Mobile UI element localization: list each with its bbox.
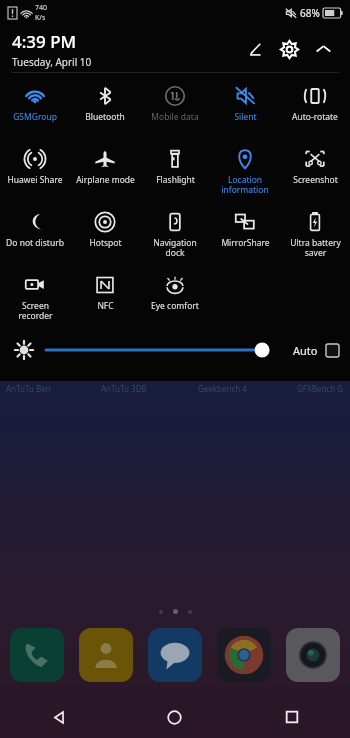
button[interactable]: Brightness <box>44 338 285 362</box>
button[interactable]: Eye comfort <box>140 267 210 330</box>
staticText: GSMGroup <box>13 111 57 123</box>
button[interactable]: App <box>79 628 133 682</box>
button[interactable]: Navigation dock <box>140 204 210 267</box>
staticText: Eye comfort <box>151 300 199 312</box>
button[interactable]: Screen recorder <box>0 267 70 330</box>
button[interactable]: App <box>286 628 340 682</box>
staticText: Bluetooth <box>85 111 125 123</box>
button[interactable]: Settings <box>272 32 306 66</box>
button[interactable]: MirrorShare <box>210 204 280 267</box>
button[interactable]: App <box>148 628 202 682</box>
button[interactable]: Screenshot <box>280 141 350 204</box>
button[interactable]: Edit <box>238 32 272 66</box>
button[interactable]: Bluetooth <box>70 78 140 141</box>
staticText: Huawei Share <box>7 174 63 186</box>
staticText: MirrorShare <box>221 237 270 249</box>
button[interactable]: Flashlight <box>140 141 210 204</box>
staticText: Auto <box>293 343 318 358</box>
staticText: Hotspot <box>89 237 122 249</box>
staticText: Screen recorder <box>18 300 53 321</box>
staticText: Ultra battery saver <box>290 237 341 258</box>
staticText: AnTuTu 3DB <box>101 383 147 394</box>
button[interactable]: Home <box>116 696 233 738</box>
button[interactable]: Back <box>0 696 116 738</box>
button[interactable]: Hotspot <box>70 204 140 267</box>
staticText: 740 <box>35 3 48 13</box>
button[interactable]: Recents <box>233 696 350 738</box>
button[interactable]: Huawei Share <box>0 141 70 204</box>
staticText: Screenshot <box>293 174 338 186</box>
button[interactable]: Ultra battery saver <box>280 204 350 267</box>
staticText: AnTuTu Ben <box>6 383 51 394</box>
staticText: GFXBench G <box>297 383 344 394</box>
staticText: Airplane mode <box>76 174 135 186</box>
button[interactable]: NFC <box>70 267 140 330</box>
staticText: 4:39 PM <box>12 30 77 53</box>
staticText: Do not disturb <box>6 237 64 249</box>
button[interactable]: Airplane mode <box>70 141 140 204</box>
staticText: Tuesday, April 10 <box>12 55 92 69</box>
button[interactable]: Collapse <box>306 32 340 66</box>
staticText: Mobile data <box>151 111 199 123</box>
button[interactable]: Silent <box>210 78 280 141</box>
staticText: Location information <box>221 174 269 195</box>
button[interactable]: Mobile data <box>140 78 210 141</box>
button[interactable]: App <box>217 628 271 682</box>
staticText: Silent <box>234 111 257 123</box>
button[interactable]: Auto-rotate <box>280 78 350 141</box>
staticText: NFC <box>97 300 114 312</box>
button[interactable]: Do not disturb <box>0 204 70 267</box>
button[interactable]: Auto <box>293 343 340 358</box>
staticText: K/s <box>35 13 46 23</box>
staticText: Navigation dock <box>153 237 197 258</box>
button[interactable]: GSMGroup <box>0 78 70 141</box>
button[interactable]: Location information <box>210 141 280 204</box>
staticText: 68% <box>300 6 320 20</box>
staticText: Geekbench 4 <box>198 383 247 394</box>
staticText: Auto-rotate <box>292 111 338 123</box>
button[interactable]: App <box>10 628 64 682</box>
staticText: Flashlight <box>156 174 195 186</box>
